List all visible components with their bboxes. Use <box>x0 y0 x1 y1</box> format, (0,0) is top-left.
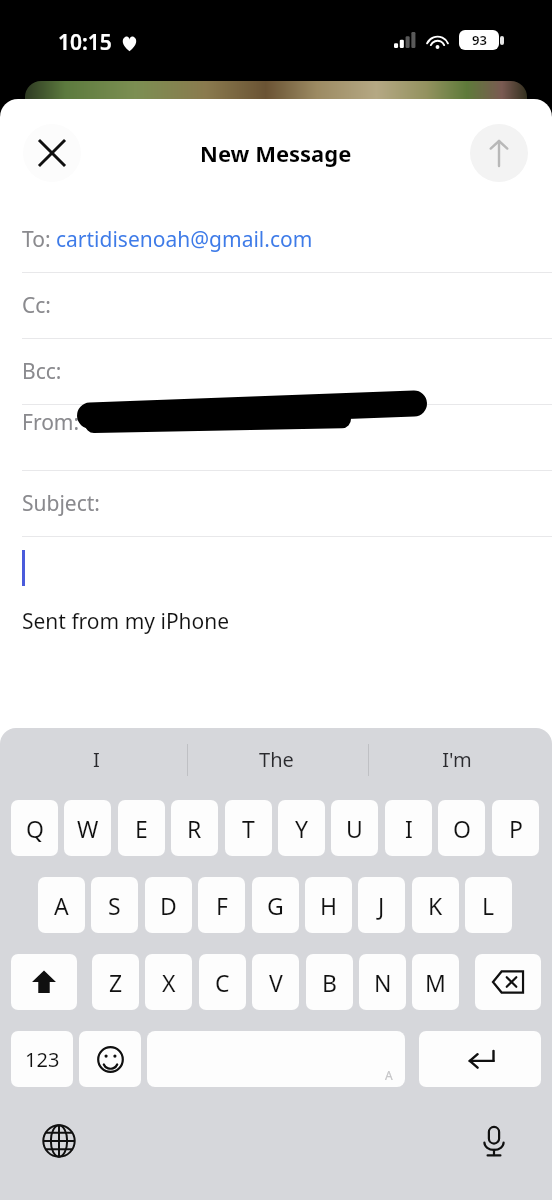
button[interactable]: T <box>225 800 272 856</box>
staticText: N <box>374 967 392 998</box>
staticText: From: <box>22 408 80 437</box>
button[interactable]: C <box>199 954 246 1010</box>
staticText: S <box>108 890 121 921</box>
button[interactable]: The <box>216 728 336 790</box>
staticText: Y <box>295 813 309 844</box>
button[interactable]: To: <box>0 207 552 272</box>
staticText: T <box>242 813 255 844</box>
button[interactable]: Shift <box>11 954 77 1010</box>
staticText: Cc: <box>22 291 51 320</box>
staticText: R <box>187 813 202 844</box>
staticText: J <box>378 890 385 921</box>
button[interactable]: N <box>359 954 406 1010</box>
button[interactable]: P <box>492 800 539 856</box>
button[interactable]: W <box>64 800 111 856</box>
staticText: A <box>385 1067 393 1083</box>
button[interactable]: Numbers <box>11 1031 73 1087</box>
staticText: D <box>160 890 177 921</box>
button[interactable]: Change keyboard <box>36 1118 82 1164</box>
button[interactable]: Return <box>419 1031 541 1087</box>
button[interactable]: Subject: <box>0 471 552 536</box>
staticText: Bcc: <box>22 357 62 386</box>
staticText: I <box>405 813 413 844</box>
button[interactable]: A <box>38 877 85 933</box>
button[interactable]: H <box>305 877 352 933</box>
button[interactable]: R <box>171 800 218 856</box>
button[interactable]: I <box>385 800 432 856</box>
button[interactable]: X <box>145 954 192 1010</box>
staticText: 123 <box>25 1046 60 1073</box>
staticText: I'm <box>442 746 472 773</box>
button[interactable]: Bcc: <box>0 339 552 404</box>
staticText: V <box>269 967 283 998</box>
staticText: The <box>259 746 294 773</box>
button[interactable]: G <box>252 877 299 933</box>
staticText: P <box>509 813 523 844</box>
staticText: F <box>216 890 228 921</box>
button[interactable]: O <box>438 800 485 856</box>
staticText: U <box>346 813 363 844</box>
staticText: W <box>77 813 99 844</box>
button[interactable]: F <box>198 877 245 933</box>
staticText: K <box>428 890 443 921</box>
button[interactable]: Close <box>23 124 81 182</box>
button[interactable]: Send <box>470 124 528 182</box>
staticText: Subject: <box>22 489 100 518</box>
button[interactable]: V <box>252 954 299 1010</box>
staticText: Q <box>26 813 44 844</box>
button[interactable]: Delete <box>475 954 541 1010</box>
staticText: Z <box>109 967 123 998</box>
button[interactable]: U <box>331 800 378 856</box>
staticText: I <box>93 746 100 773</box>
button[interactable]: I'm <box>397 728 517 790</box>
staticText: X <box>162 967 176 998</box>
button[interactable]: From: <box>0 405 552 470</box>
staticText: New Message <box>200 138 352 168</box>
staticText: O <box>453 813 471 844</box>
button[interactable]: Z <box>92 954 139 1010</box>
staticText: H <box>320 890 338 921</box>
button[interactable]: B <box>306 954 353 1010</box>
staticText: cartidisenoah@gmail.com <box>56 225 313 254</box>
staticText: G <box>267 890 284 921</box>
button[interactable]: D <box>145 877 192 933</box>
button[interactable]: Emoji <box>79 1031 141 1087</box>
button[interactable]: Cc: <box>0 273 552 338</box>
staticText: L <box>482 890 495 921</box>
button[interactable]: Space <box>147 1031 405 1087</box>
button[interactable]: E <box>118 800 165 856</box>
staticText: 10:15 <box>58 28 112 57</box>
staticText: To: <box>22 225 56 254</box>
staticText: C <box>215 967 230 998</box>
button[interactable]: S <box>91 877 138 933</box>
button[interactable]: Y <box>278 800 325 856</box>
button[interactable]: J <box>358 877 405 933</box>
staticText: 93 <box>472 31 487 49</box>
button[interactable]: Dictate <box>471 1118 517 1164</box>
staticText: B <box>322 967 337 998</box>
button[interactable]: L <box>465 877 512 933</box>
button[interactable]: M <box>412 954 459 1010</box>
button[interactable]: I <box>36 728 156 790</box>
button[interactable]: Q <box>11 800 58 856</box>
staticText: E <box>135 813 148 844</box>
button[interactable]: K <box>412 877 459 933</box>
staticText: M <box>425 967 446 998</box>
staticText: Sent from my iPhone <box>22 607 230 636</box>
staticText: A <box>54 890 69 921</box>
